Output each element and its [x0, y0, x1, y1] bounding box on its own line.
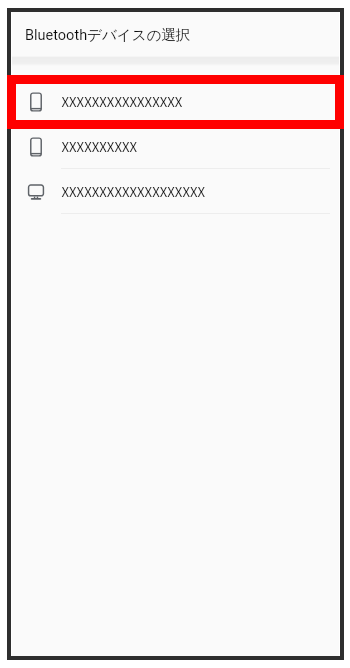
staticText: XXXXXXXXXX	[61, 137, 137, 156]
button[interactable]: XXXXXXXXXXXXXXXX	[12, 79, 339, 124]
staticText: Bluetoothデバイスの選択	[25, 25, 191, 43]
staticText: XXXXXXXXXXXXXXXX	[61, 92, 182, 111]
staticText: XXXXXXXXXXXXXXXXXXX	[61, 182, 205, 201]
button[interactable]: XXXXXXXXXX	[12, 124, 339, 169]
button[interactable]: XXXXXXXXXXXXXXXXXXX	[12, 169, 339, 214]
